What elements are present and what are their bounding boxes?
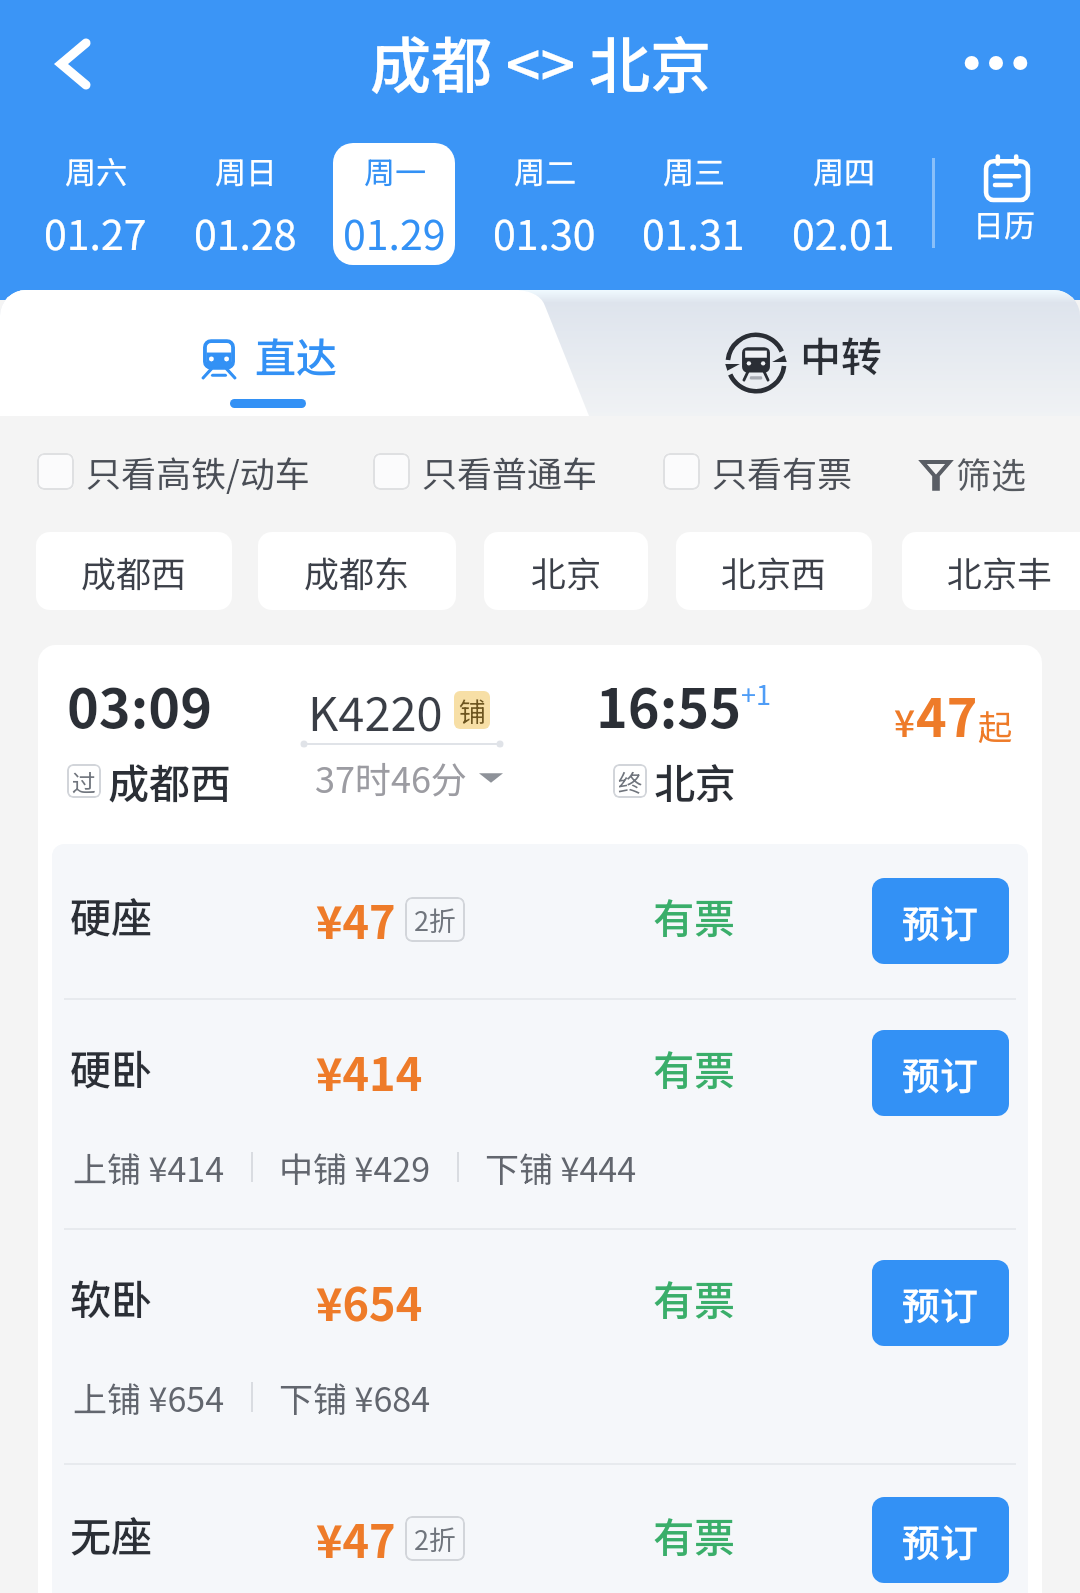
button[interactable]: 预订	[872, 1497, 1009, 1583]
staticText: 下铺 ¥684	[279, 1373, 431, 1422]
staticText: 2折	[414, 1519, 456, 1558]
staticText: 有票	[653, 1505, 735, 1564]
button[interactable]: 成都东	[258, 532, 456, 610]
staticText: ¥414	[316, 1039, 423, 1104]
staticText: 上铺 ¥654	[73, 1373, 225, 1422]
staticText: 成都西	[81, 546, 187, 597]
staticText: 47	[916, 677, 978, 752]
button[interactable]: 硬卧	[52, 998, 1028, 1148]
button[interactable]: 周三	[632, 143, 754, 265]
staticText: 有票	[653, 1268, 735, 1327]
staticText: 硬座	[70, 885, 152, 944]
staticText: 01.27	[44, 202, 147, 261]
button[interactable]: 北京丰	[902, 532, 1080, 610]
staticText: 日历	[973, 201, 1035, 246]
staticText: 周四	[813, 148, 875, 193]
staticText: 有票	[653, 886, 735, 945]
button[interactable]: 北京西	[676, 532, 872, 610]
staticText: 中铺 ¥429	[279, 1143, 431, 1192]
staticText: 成都西	[108, 751, 231, 810]
button[interactable]: 周一	[333, 143, 455, 265]
staticText: ¥47	[316, 887, 396, 952]
staticText: 周三	[663, 148, 725, 193]
staticText: 16:55	[596, 665, 741, 743]
button[interactable]: 预订	[872, 1260, 1009, 1346]
staticText: ¥	[894, 694, 916, 748]
staticText: 铺	[459, 691, 486, 729]
staticText: 只看高铁/动车	[86, 446, 310, 497]
staticText: 成都 <> 北京	[370, 17, 711, 105]
button[interactable]: 筛选	[915, 426, 1037, 516]
staticText: 成都东	[304, 546, 410, 597]
button[interactable]: 预订	[872, 1030, 1009, 1116]
staticText: 周二	[514, 148, 576, 193]
button[interactable]: 硬座	[52, 844, 1028, 998]
staticText: 预订	[902, 1513, 979, 1568]
staticText: 03:09	[67, 665, 212, 743]
staticText: 筛选	[956, 447, 1027, 498]
staticText: 预订	[902, 1276, 979, 1331]
staticText: 中转	[800, 324, 882, 383]
staticText: 周六	[65, 148, 127, 193]
staticText: 上铺 ¥414	[73, 1143, 225, 1192]
staticText: 北京	[654, 751, 736, 810]
staticText: 2折	[414, 900, 456, 939]
staticText: 有票	[653, 1038, 735, 1097]
staticText: +1	[741, 674, 771, 713]
button[interactable]: 预订	[872, 878, 1009, 964]
staticText: 北京西	[721, 546, 827, 597]
staticText: 只看有票	[712, 446, 853, 497]
staticText: 预订	[902, 1046, 979, 1101]
staticText: 软卧	[70, 1267, 152, 1326]
staticText: 北京丰	[947, 546, 1053, 597]
staticText: ¥654	[316, 1269, 423, 1334]
staticText: 02.01	[792, 202, 895, 261]
staticText: 过	[72, 764, 96, 798]
button[interactable]: 周日	[184, 143, 306, 265]
staticText: 01.29	[343, 202, 446, 261]
button[interactable]: 成都西	[36, 532, 232, 610]
button[interactable]: 周六	[34, 143, 156, 265]
button[interactable]: 北京	[484, 532, 648, 610]
staticText: 01.31	[642, 202, 745, 261]
staticText: 起	[978, 701, 1012, 750]
button[interactable]: 直达	[140, 290, 400, 416]
button[interactable]: 软卧	[52, 1228, 1028, 1378]
staticText: 直达	[255, 325, 337, 384]
button[interactable]: 周四	[782, 143, 904, 265]
button[interactable]: Back	[22, 15, 122, 115]
staticText: 01.28	[194, 202, 297, 261]
button[interactable]: 只看普通车	[373, 426, 598, 516]
staticText: 无座	[70, 1504, 152, 1563]
staticText: ¥47	[316, 1506, 396, 1571]
button[interactable]: 只看有票	[663, 426, 853, 516]
staticText: 37时46分	[315, 751, 467, 803]
button[interactable]: 中转	[700, 290, 930, 416]
staticText: 下铺 ¥444	[485, 1143, 637, 1192]
button[interactable]: More options	[947, 15, 1047, 115]
staticText: K4220	[308, 676, 443, 744]
staticText: 终	[618, 764, 642, 798]
staticText: 硬卧	[70, 1037, 152, 1096]
staticText: 北京	[531, 546, 602, 597]
staticText: 周日	[215, 148, 277, 193]
button[interactable]: 周二	[483, 143, 605, 265]
staticText: 周一	[364, 148, 426, 193]
staticText: 预订	[902, 894, 979, 949]
button[interactable]: 只看高铁/动车	[37, 426, 310, 516]
button[interactable]: 无座	[52, 1463, 1028, 1593]
staticText: 只看普通车	[422, 446, 598, 497]
staticText: 01.30	[493, 202, 596, 261]
button[interactable]: Calendar	[950, 140, 1066, 258]
